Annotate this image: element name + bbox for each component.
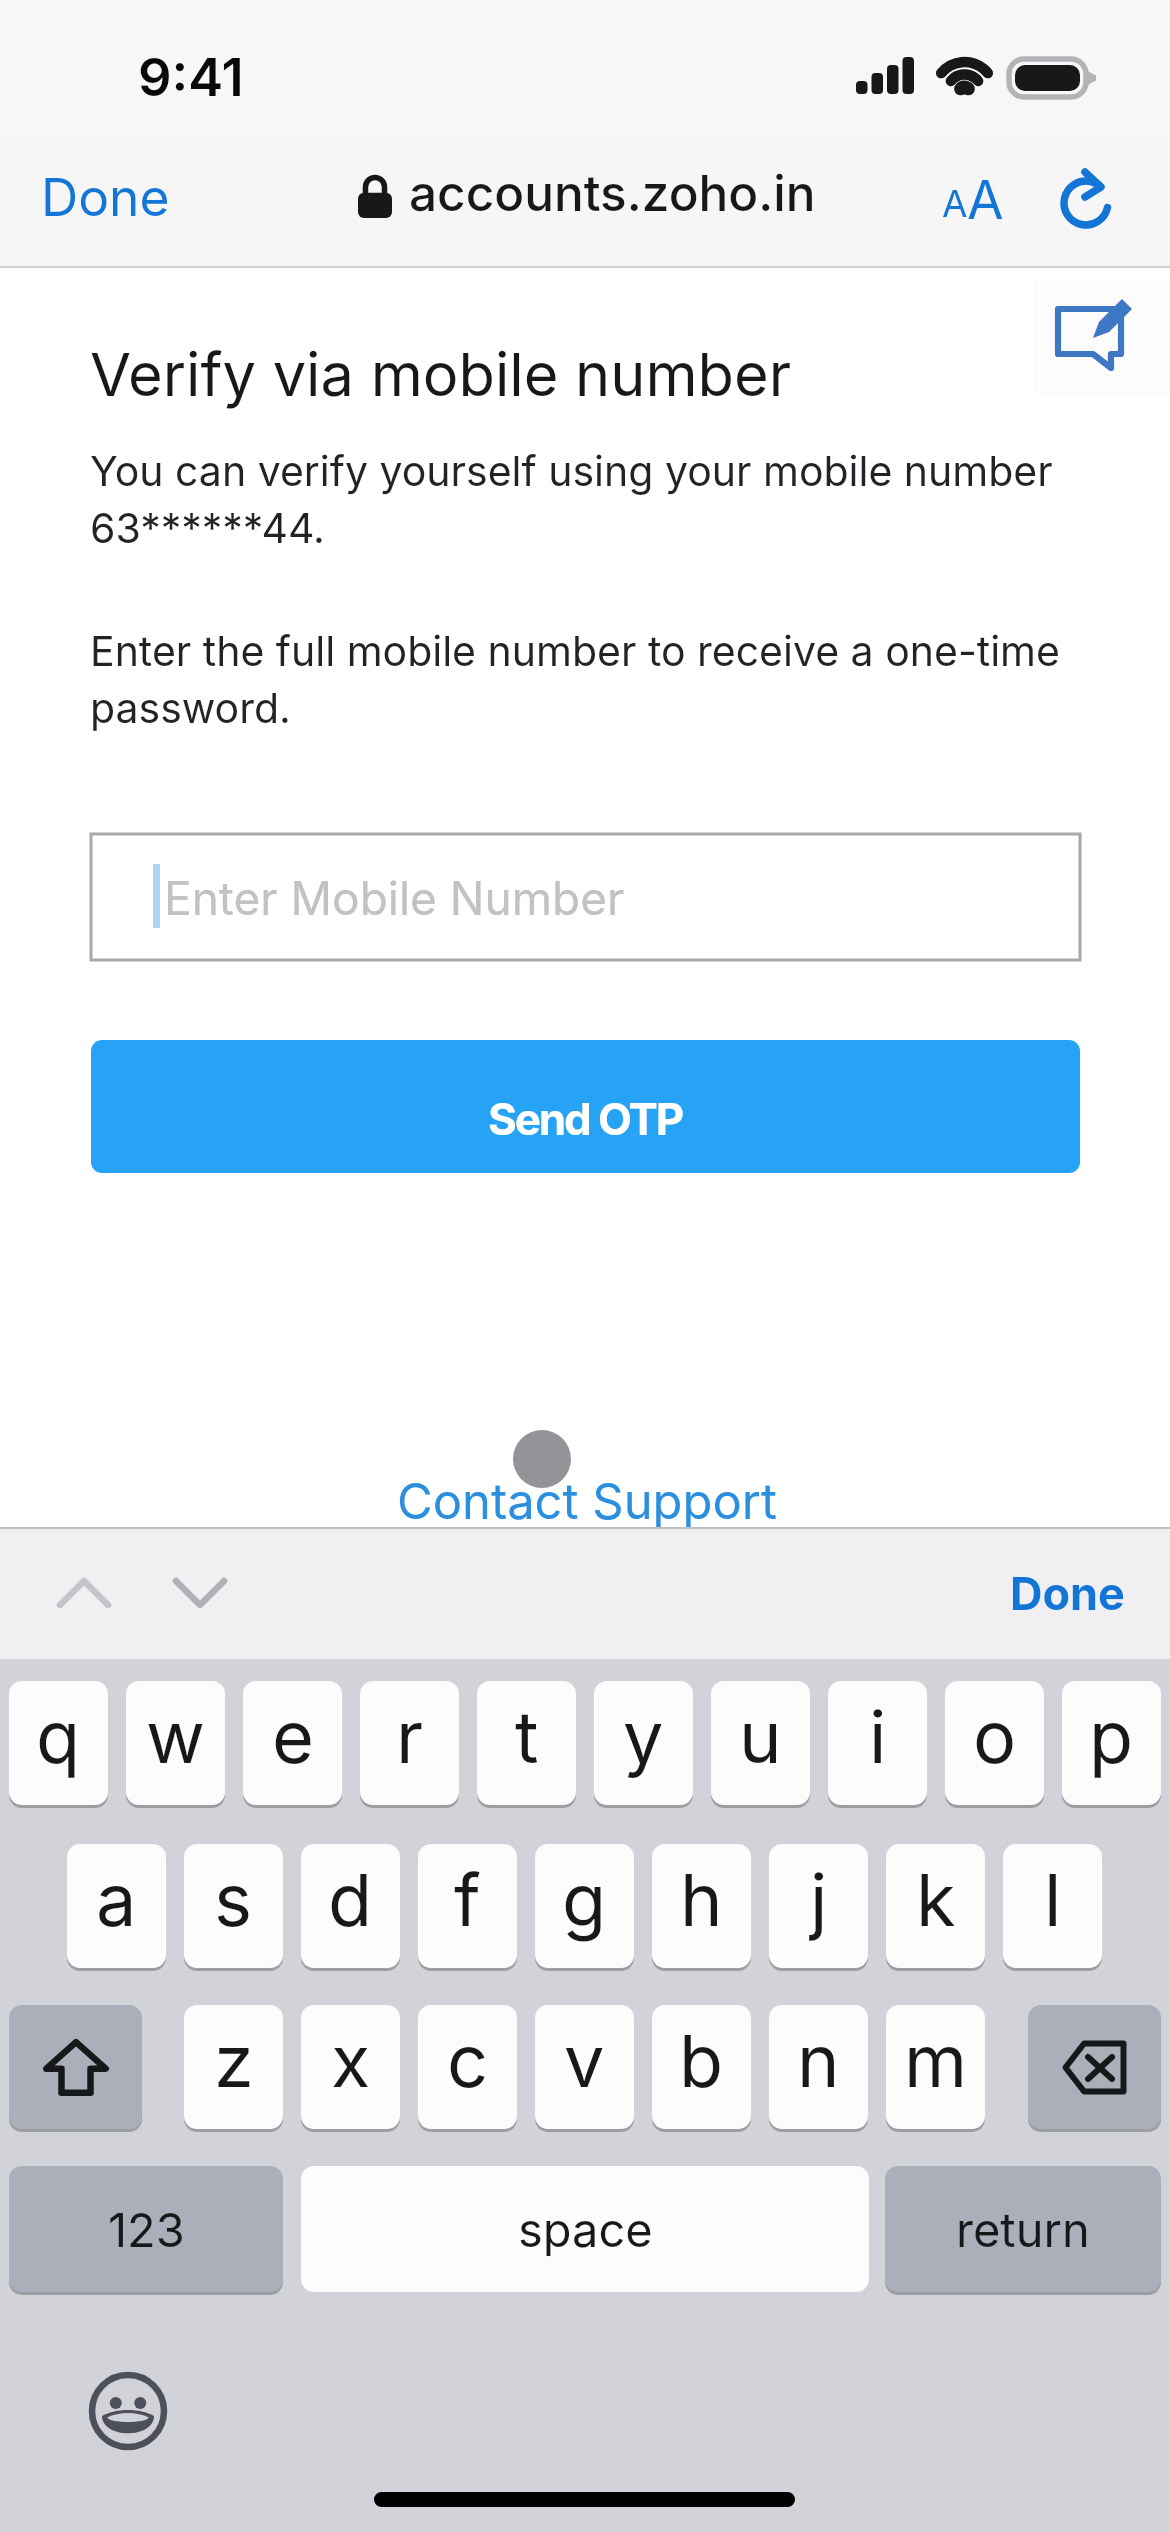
button[interactable]: Backspace bbox=[1028, 2005, 1161, 2129]
staticText: A bbox=[942, 181, 968, 226]
button[interactable]: Numbers bbox=[9, 2166, 283, 2292]
button[interactable]: p bbox=[1062, 1681, 1161, 1805]
button[interactable]: space bbox=[301, 2166, 869, 2292]
button[interactable]: k bbox=[886, 1844, 985, 1968]
staticText: Done bbox=[41, 166, 170, 228]
staticText: 123 bbox=[108, 2201, 185, 2258]
staticText: Contact Support bbox=[397, 1472, 777, 1531]
staticText: e bbox=[272, 1693, 314, 1780]
staticText: A bbox=[967, 168, 1004, 232]
button[interactable]: Done bbox=[17, 144, 194, 250]
button[interactable]: j bbox=[769, 1844, 868, 1968]
button[interactable]: Reload bbox=[1042, 147, 1134, 247]
button[interactable]: h bbox=[652, 1844, 751, 1968]
staticText: n bbox=[797, 2017, 840, 2104]
button[interactable]: e bbox=[243, 1681, 342, 1805]
button[interactable]: u bbox=[711, 1681, 810, 1805]
staticText: u bbox=[739, 1693, 782, 1780]
staticText: return bbox=[956, 2201, 1090, 2258]
button[interactable]: Enter Mobile Number bbox=[91, 834, 1080, 960]
staticText: g bbox=[562, 1856, 607, 1943]
staticText: q bbox=[36, 1693, 81, 1780]
staticText: 9:41 bbox=[138, 45, 244, 109]
staticText: h bbox=[680, 1856, 723, 1943]
button[interactable]: w bbox=[126, 1681, 225, 1805]
staticText: Verify via mobile number bbox=[90, 338, 792, 410]
button[interactable]: i bbox=[828, 1681, 927, 1805]
button[interactable]: m bbox=[886, 2005, 985, 2129]
button[interactable]: Feedback bbox=[1036, 280, 1170, 391]
staticText: a bbox=[96, 1856, 137, 1943]
staticText: p bbox=[1089, 1693, 1134, 1780]
staticText: c bbox=[447, 2017, 489, 2104]
button[interactable]: n bbox=[769, 2005, 868, 2129]
staticText: t bbox=[515, 1693, 539, 1780]
button[interactable]: Previous field bbox=[27, 1548, 141, 1638]
staticText: r bbox=[396, 1693, 424, 1780]
staticText: accounts.zoho.in bbox=[409, 163, 816, 223]
staticText: b bbox=[679, 2017, 724, 2104]
button[interactable]: Return bbox=[885, 2166, 1161, 2292]
staticText: l bbox=[1044, 1856, 1062, 1943]
button[interactable]: b bbox=[652, 2005, 751, 2129]
staticText: k bbox=[916, 1856, 956, 1943]
button[interactable]: Text size bbox=[920, 147, 1034, 261]
staticText: m bbox=[904, 2017, 968, 2104]
staticText: Enter Mobile Number bbox=[164, 870, 625, 926]
staticText: s bbox=[214, 1856, 253, 1943]
button[interactable]: x bbox=[301, 2005, 400, 2129]
staticText: i bbox=[869, 1693, 887, 1780]
staticText: f bbox=[454, 1856, 481, 1943]
button[interactable]: Done bbox=[986, 1552, 1149, 1634]
button[interactable]: z bbox=[184, 2005, 283, 2129]
staticText: w bbox=[146, 1693, 205, 1780]
button[interactable]: s bbox=[184, 1844, 283, 1968]
button[interactable]: o bbox=[945, 1681, 1044, 1805]
button[interactable]: y bbox=[594, 1681, 693, 1805]
button[interactable]: t bbox=[477, 1681, 576, 1805]
staticText: v bbox=[564, 2017, 605, 2104]
staticText: Done bbox=[1010, 1566, 1125, 1620]
button[interactable]: Emoji keyboard bbox=[85, 2368, 171, 2454]
staticText: o bbox=[973, 1693, 1017, 1780]
button[interactable]: f bbox=[418, 1844, 517, 1968]
staticText: Enter the full mobile number to receive … bbox=[90, 626, 1075, 733]
button[interactable]: c bbox=[418, 2005, 517, 2129]
staticText: d bbox=[328, 1856, 373, 1943]
staticText: z bbox=[214, 2017, 254, 2104]
button[interactable]: d bbox=[301, 1844, 400, 1968]
button[interactable]: a bbox=[67, 1844, 166, 1968]
button[interactable]: Next field bbox=[143, 1548, 257, 1638]
button[interactable]: l bbox=[1003, 1844, 1102, 1968]
button[interactable]: Send OTP bbox=[91, 1040, 1080, 1173]
staticText: x bbox=[331, 2017, 371, 2104]
staticText: space bbox=[518, 2201, 653, 2258]
button[interactable]: Contact Support bbox=[373, 1462, 801, 1541]
button[interactable]: g bbox=[535, 1844, 634, 1968]
staticText: y bbox=[623, 1693, 664, 1780]
staticText: j bbox=[810, 1856, 828, 1943]
button[interactable]: v bbox=[535, 2005, 634, 2129]
staticText: Send OTP bbox=[488, 1092, 683, 1145]
staticText: You can verify yourself using your mobil… bbox=[90, 446, 1075, 553]
button[interactable]: r bbox=[360, 1681, 459, 1805]
button[interactable]: q bbox=[9, 1681, 108, 1805]
button[interactable]: Shift bbox=[9, 2005, 142, 2129]
